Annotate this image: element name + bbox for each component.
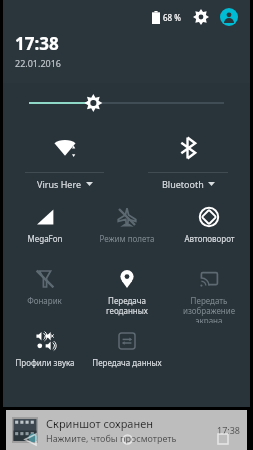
button[interactable]: Flashlight: [3, 261, 86, 323]
button[interactable]: MegaFon mobile network: [3, 199, 86, 261]
button[interactable]: Airplane mode: [86, 199, 168, 261]
staticText: 22.01.2016: [15, 57, 62, 69]
button[interactable]: Wi-Fi: [3, 123, 126, 195]
button[interactable]: Data transfer: [86, 323, 168, 385]
button[interactable]: Bluetooth: [126, 123, 250, 195]
button[interactable]: Home: [117, 429, 137, 449]
staticText: Передача геоданных: [88, 295, 166, 316]
staticText: Профили звука: [15, 357, 75, 368]
button[interactable]: Cast screen: [168, 261, 250, 323]
staticText: 17:38: [217, 424, 241, 436]
staticText: Bluetooth: [162, 178, 204, 190]
button[interactable]: Location: [86, 261, 168, 323]
button[interactable]: Auto rotate: [168, 199, 250, 261]
button[interactable]: Settings: [190, 6, 212, 28]
staticText: Скриншот сохранен: [46, 416, 154, 431]
staticText: MegaFon: [27, 233, 63, 244]
staticText: Фонарик: [27, 295, 62, 306]
button[interactable]: Back: [20, 429, 40, 449]
button[interactable]: Sound profiles: [3, 323, 86, 385]
staticText: Virus Here: [37, 178, 82, 190]
staticText: Передача данных: [92, 357, 162, 368]
staticText: 68 %: [163, 12, 181, 23]
button[interactable]: User profile: [218, 6, 240, 28]
staticText: 17:38: [15, 32, 59, 55]
staticText: Автоповорот: [184, 233, 235, 244]
button[interactable]: Brightness: [3, 83, 250, 123]
staticText: Нажмите, чтобы просмотреть: [46, 432, 177, 444]
button[interactable]: Recents: [213, 429, 233, 449]
button[interactable]: Скриншот сохранен: [6, 410, 247, 450]
staticText: Режим полета: [99, 233, 155, 244]
staticText: Передать изображение экрана: [170, 295, 248, 323]
